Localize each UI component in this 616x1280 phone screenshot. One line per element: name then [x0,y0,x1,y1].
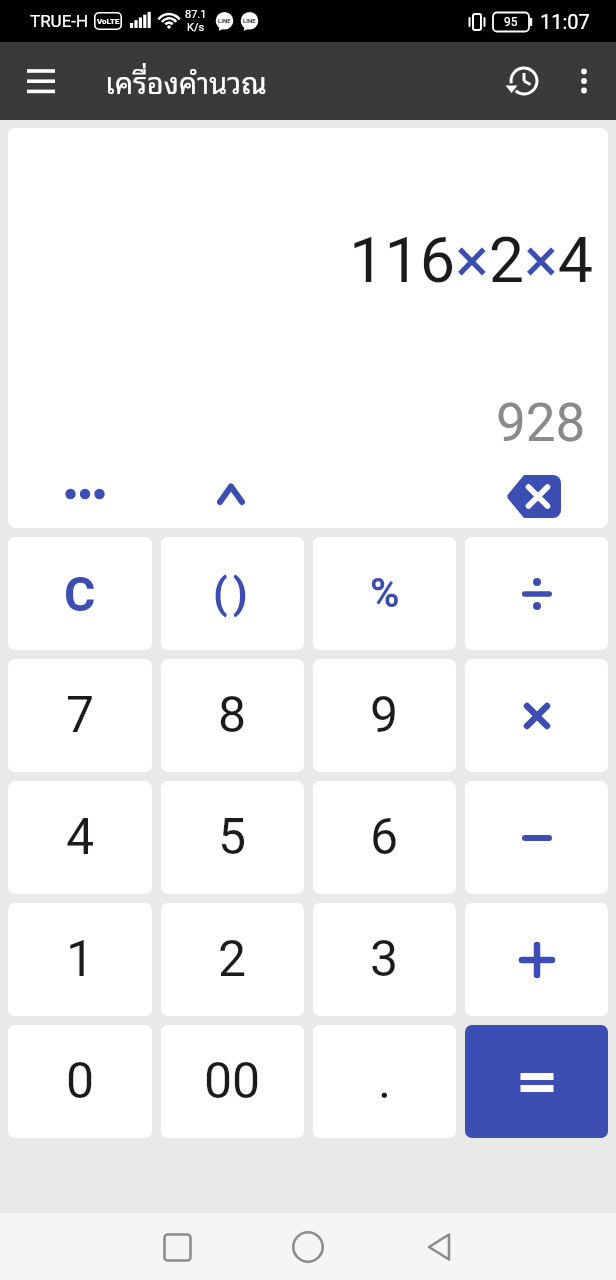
staticText: LINE [218,17,231,24]
staticText: 00 [204,1052,261,1111]
staticText: LINE [243,17,256,24]
staticText: 5 [218,808,247,867]
button[interactable]: 5 [161,781,304,894]
button[interactable]: 0 [8,1025,152,1138]
staticText: TRUE-H [30,11,89,31]
button[interactable]: 00 [161,1025,304,1138]
button[interactable]: 9 [313,659,456,772]
staticText: 0 [66,1052,95,1111]
button[interactable] [42,465,128,523]
button[interactable]: () [161,537,304,650]
staticText: . [378,1052,392,1111]
staticText: K/s [187,21,205,34]
button[interactable] [14,54,68,108]
staticText: VoLTE [97,17,120,26]
button[interactable]: 7 [8,659,152,772]
button[interactable]: 1 [8,903,152,1016]
staticText: 7 [66,686,95,745]
button[interactable] [188,465,274,523]
staticText: 87.1 [185,8,207,21]
staticText: 1 [66,930,95,989]
button[interactable]: 6 [313,781,456,894]
button[interactable] [560,57,608,105]
button[interactable]: 8 [161,659,304,772]
button[interactable] [465,537,608,650]
button[interactable] [147,1217,207,1277]
staticText: เครื่องคำนวณ [105,58,267,104]
staticText: 11:07 [540,10,590,33]
staticText: 9 [370,686,399,745]
button[interactable] [496,54,550,108]
staticText: 3 [370,930,399,989]
button[interactable] [278,1217,338,1277]
button[interactable] [465,659,608,772]
button[interactable] [465,781,608,894]
button[interactable]: . [313,1025,456,1138]
button[interactable] [465,903,608,1016]
staticText: 4 [66,808,95,867]
staticText: % [370,570,400,617]
button[interactable] [465,1025,608,1138]
staticText: 116×2×4 [349,224,594,298]
staticText: () [213,569,253,618]
staticText: 6 [370,808,399,867]
button[interactable]: % [313,537,456,650]
button[interactable]: 2 [161,903,304,1016]
staticText: 928 [496,392,586,454]
staticText: 95 [504,15,518,29]
staticText: 8 [218,686,247,745]
button[interactable] [410,1217,470,1277]
button[interactable]: 4 [8,781,152,894]
button[interactable] [491,467,577,525]
staticText: 2 [218,930,247,989]
button[interactable]: 3 [313,903,456,1016]
button[interactable]: C [8,537,152,650]
staticText: C [64,566,96,622]
